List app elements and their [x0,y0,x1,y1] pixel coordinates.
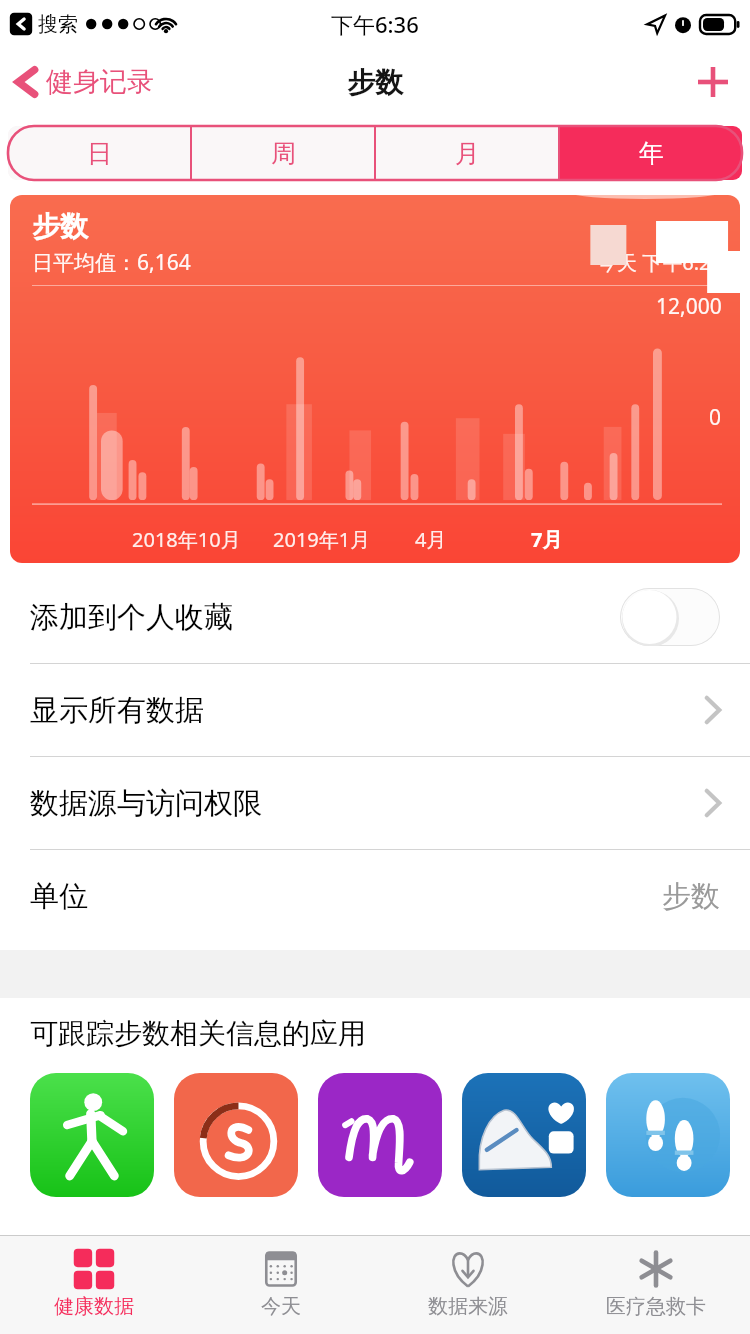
staticText: 周 [271,138,296,169]
staticText: 健身记录 [46,65,154,99]
staticText: 步数 [32,209,88,244]
staticText: 下午6:36 [331,9,419,39]
button[interactable]: 单位 [0,850,750,942]
staticText: 12,000 [656,292,722,321]
button[interactable]: 数据来源 [374,1236,562,1334]
staticText: 单位 [30,878,88,915]
staticText: 月 [455,138,480,169]
staticText: 数据源与访问权限 [30,785,262,822]
button[interactable]: 周 [192,126,374,180]
staticText: 0 [709,403,722,432]
staticText: 日平均值：6,164 [32,248,191,277]
button[interactable]: App 0 [30,1073,154,1197]
staticText: 数据来源 [428,1294,508,1319]
staticText: 今天 下午6:26 [597,249,722,276]
staticText: 显示所有数据 [30,692,204,729]
staticText: 可跟踪步数相关信息的应用 [30,1016,366,1051]
staticText: 7月 [531,526,563,553]
button[interactable]: 健康数据 [0,1236,187,1334]
button[interactable]: Toggle favorite [620,588,720,646]
staticText: 步数 [662,878,720,915]
button[interactable]: 医疗急救卡 [562,1236,750,1334]
button[interactable]: 日 [8,126,190,180]
staticText: 添加到个人收藏 [30,599,233,636]
staticText: 医疗急救卡 [606,1294,706,1319]
button[interactable]: 今天 [187,1236,374,1334]
button[interactable]: App 4 [606,1073,730,1197]
staticText: 健康数据 [54,1294,134,1319]
button[interactable]: 步数 [10,195,740,563]
button[interactable]: 显示所有数据 [0,664,750,756]
button[interactable]: 健身记录 [0,58,166,106]
button[interactable]: App 2 [318,1073,442,1197]
staticText: 2019年1月 [273,526,371,553]
button[interactable]: 月 [376,126,558,180]
button[interactable]: 年 [560,126,742,180]
button[interactable]: 添加到个人收藏 [0,571,750,663]
staticText: 4月 [415,526,447,553]
button[interactable]: 数据源与访问权限 [0,757,750,849]
staticText: 步数 [347,65,403,100]
staticText: 2018年10月 [132,526,241,553]
button[interactable]: Add [676,55,750,109]
staticText: 年 [639,138,664,169]
button[interactable]: App 3 [462,1073,586,1197]
staticText: 搜索 [38,12,78,37]
button[interactable]: App 1 [174,1073,298,1197]
staticText: 日 [87,138,112,169]
staticText: 今天 [261,1294,301,1319]
